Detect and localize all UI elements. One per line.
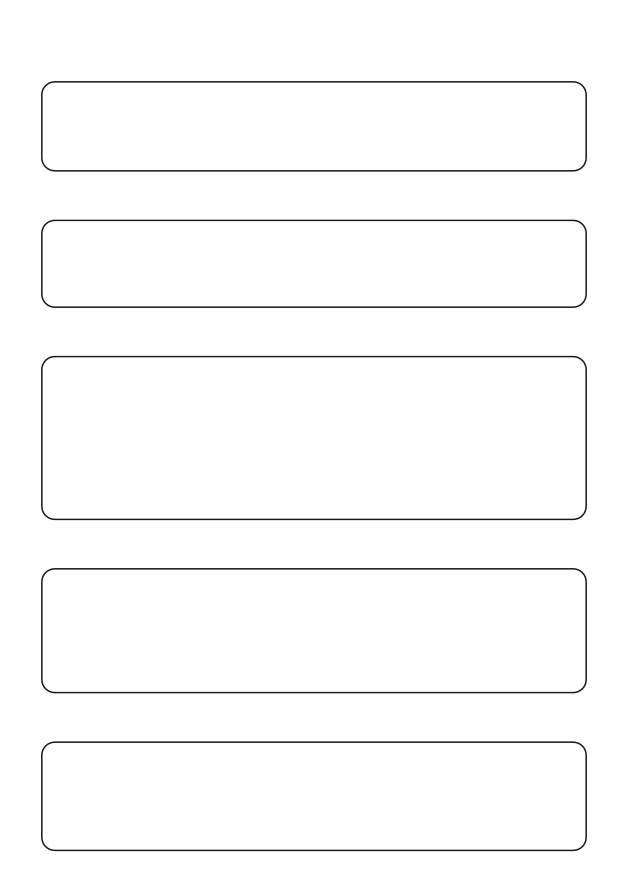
button[interactable]: Card 1: [42, 82, 586, 171]
button[interactable]: Card 3: [42, 357, 586, 519]
button[interactable]: Card 4: [42, 569, 586, 693]
button[interactable]: Card 5: [42, 742, 586, 850]
button[interactable]: Card 2: [42, 220, 586, 307]
